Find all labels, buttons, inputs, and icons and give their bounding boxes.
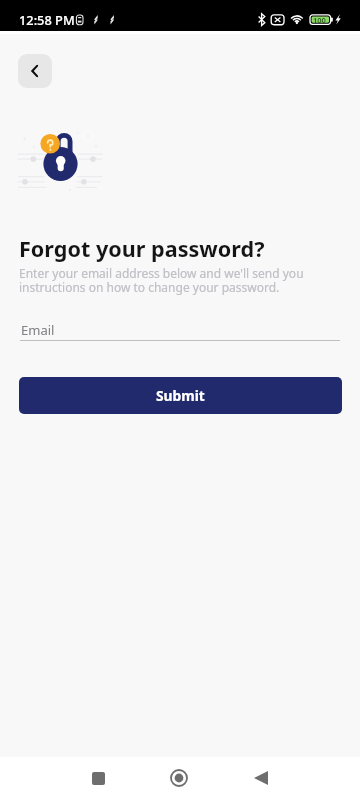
- button[interactable]: Submit: [19, 377, 342, 414]
- button[interactable]: Home: [161, 760, 197, 796]
- staticText: Submit: [156, 386, 205, 405]
- button[interactable]: Back: [243, 760, 279, 796]
- staticText: 12:58 PM: [19, 11, 75, 28]
- staticText: Email: [21, 321, 55, 339]
- staticText: 100: [313, 15, 326, 25]
- button[interactable]: Recent apps: [80, 760, 116, 796]
- button[interactable]: Back: [18, 54, 52, 88]
- staticText: Forgot your password?: [19, 234, 265, 263]
- staticText: Enter your email address below and we'll…: [19, 265, 304, 295]
